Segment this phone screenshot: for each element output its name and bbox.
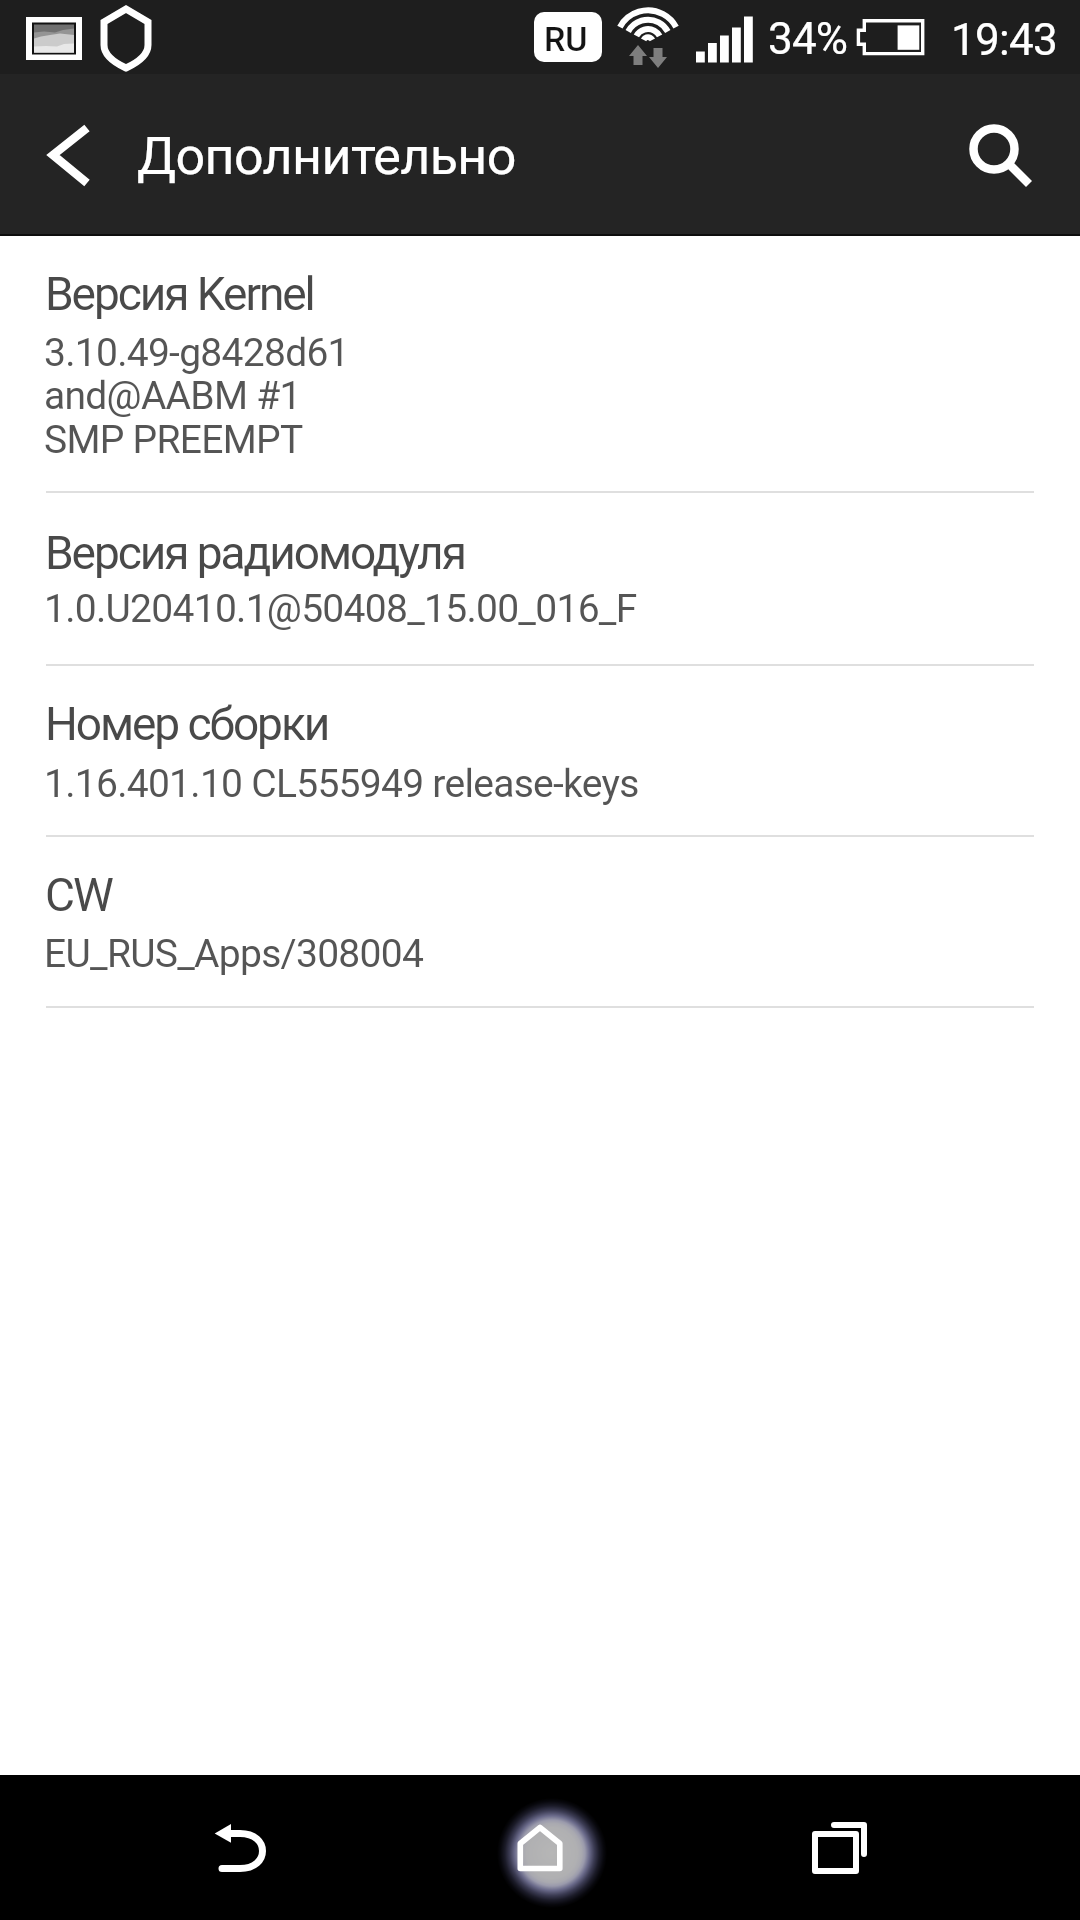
staticText: 34%: [768, 13, 848, 65]
staticText: RU: [544, 19, 588, 59]
button[interactable]: CW: [0, 837, 1080, 1008]
staticText: Версия радиомодуля: [45, 526, 465, 580]
staticText: 19:43: [951, 14, 1058, 66]
button[interactable]: Home: [486, 1788, 616, 1918]
button[interactable]: Back: [8, 100, 118, 210]
staticText: SMP PREEMPT: [44, 417, 303, 463]
staticText: and@AABM #1: [44, 373, 301, 419]
staticText: Версия Kernel: [45, 267, 314, 321]
button[interactable]: Номер сборки: [0, 666, 1080, 837]
staticText: EU_RUS_Apps/308004: [44, 931, 424, 977]
button[interactable]: Back: [185, 1790, 295, 1900]
button[interactable]: Recents: [800, 1810, 900, 1910]
button[interactable]: Версия радиомодуля: [0, 493, 1080, 666]
staticText: 1.16.401.10 CL555949 release-keys: [44, 761, 639, 807]
button[interactable]: Версия Kernel: [0, 236, 1080, 493]
staticText: 1.0.U20410.1@50408_15.00_016_F: [44, 586, 637, 632]
staticText: CW: [45, 868, 112, 922]
staticText: 3.10.49-g8428d61: [44, 330, 349, 376]
staticText: Дополнительно: [137, 126, 516, 187]
staticText: Номер сборки: [45, 697, 329, 751]
button[interactable]: Search: [940, 94, 1050, 204]
